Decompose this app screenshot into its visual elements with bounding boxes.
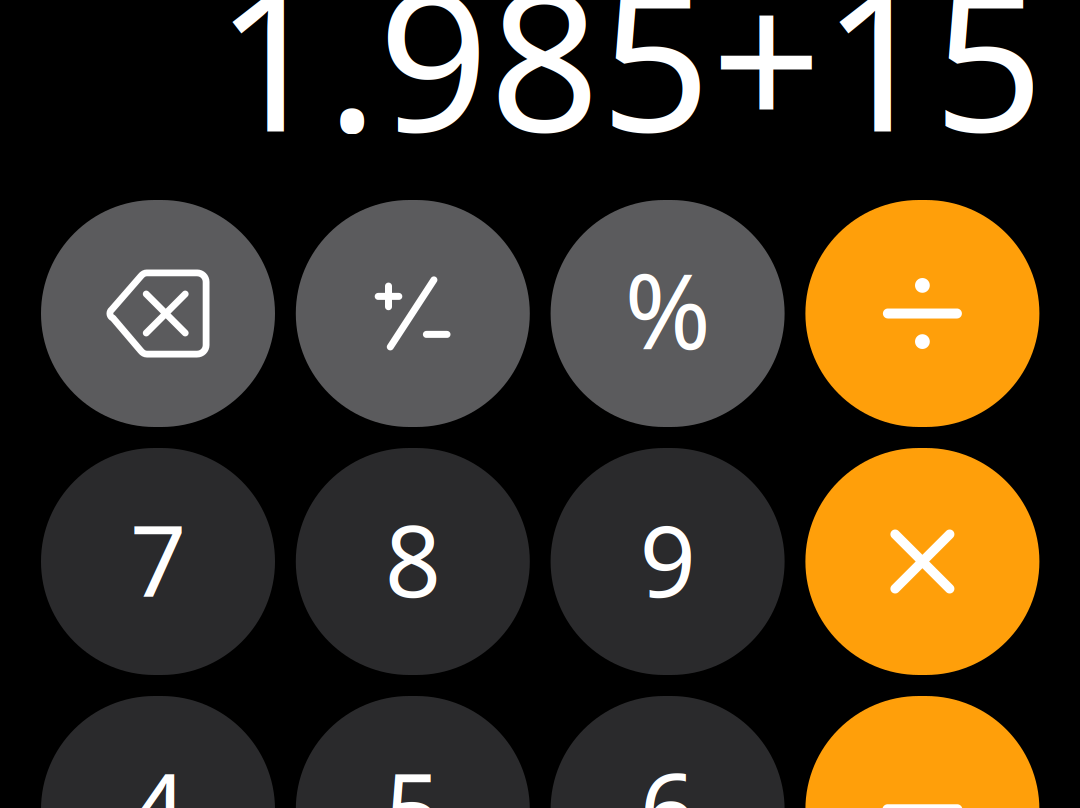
button[interactable]: Delete [41,200,275,427]
staticText: 4 [130,741,186,808]
button[interactable]: 8 [296,448,530,675]
staticText: 7 [130,493,186,624]
staticText: % [625,240,711,378]
button[interactable]: Multiply [805,448,1039,675]
staticText: 6 [640,741,696,808]
staticText: 5 [385,741,441,808]
button[interactable]: 4 [41,696,275,808]
staticText: 1.985+15 [215,0,1044,185]
staticText: 8 [385,493,441,624]
button[interactable]: 7 [41,448,275,675]
button[interactable]: Percent [551,200,785,427]
button[interactable]: Plus minus [296,200,530,427]
button[interactable]: Minus [805,696,1039,808]
staticText: 9 [640,493,696,624]
button[interactable]: 6 [551,696,785,808]
button[interactable]: 5 [296,696,530,808]
button[interactable]: 9 [551,448,785,675]
button[interactable]: Divide [805,200,1039,427]
